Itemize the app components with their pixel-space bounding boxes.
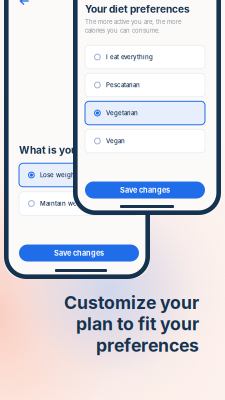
staticText: The more active you are, the more [85, 18, 181, 26]
button[interactable]: Save changes [85, 181, 205, 198]
button[interactable]: Save changes [19, 244, 139, 261]
staticText: preferences [96, 335, 199, 356]
button[interactable]: I eat everything [85, 45, 205, 69]
staticText: Lose weight [40, 171, 77, 179]
button[interactable]: Vegan [85, 129, 205, 153]
staticText: Maintain weight [40, 200, 89, 207]
staticText: What is your goal? [19, 144, 110, 156]
staticText: Save changes [54, 249, 104, 257]
staticText: Vegetarian [106, 109, 138, 117]
button[interactable]: Back [19, 0, 30, 6]
staticText: plan to fit your [76, 313, 199, 335]
staticText: Your diet preferences [85, 3, 190, 15]
staticText: calories you can consume. [85, 27, 160, 34]
button[interactable]: Pescatarian [85, 73, 205, 97]
staticText: Pescatarian [106, 81, 140, 89]
staticText: I eat everything [106, 53, 153, 61]
staticText: Vegan [106, 137, 125, 145]
button[interactable]: Vegetarian [85, 101, 205, 125]
button[interactable]: Lose weight [19, 163, 138, 187]
staticText: Customize your [64, 292, 199, 313]
staticText: Save changes [120, 186, 170, 194]
button[interactable]: Maintain weight [19, 192, 138, 215]
